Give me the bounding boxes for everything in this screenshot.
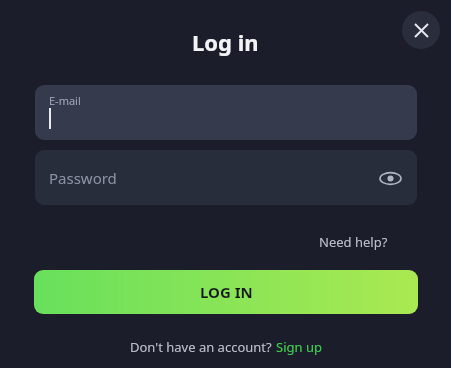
button[interactable]: LOG IN [34,270,418,314]
staticText: Sign up [276,338,322,356]
button[interactable]: E-mail [35,85,417,140]
button[interactable]: Sign up [276,338,322,356]
staticText: E-mail [49,93,81,108]
staticText: Log in [192,27,259,57]
button[interactable]: Close [402,11,440,49]
button[interactable]: Password [35,150,417,205]
button[interactable]: Show password [373,161,407,195]
staticText: LOG IN [200,282,253,302]
button[interactable]: Need help? [317,231,390,253]
staticText: Password [49,168,117,188]
staticText: Don't have an account? [130,338,276,356]
staticText: Need help? [319,233,388,251]
